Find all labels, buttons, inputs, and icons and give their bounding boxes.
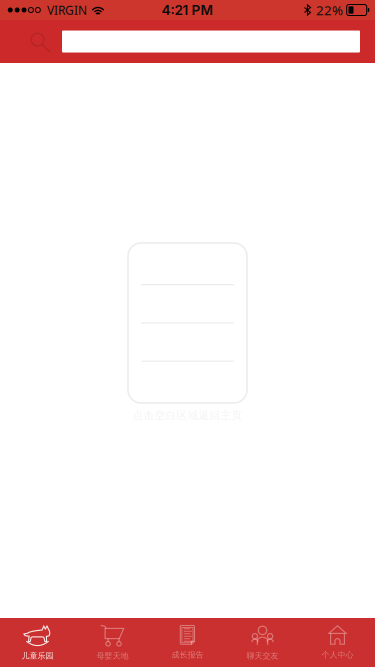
staticText: 母婴天地	[96, 651, 128, 661]
button[interactable]: 个人中心	[300, 618, 375, 667]
staticText: 22%	[316, 1, 343, 19]
button[interactable]: 成长报告	[150, 618, 225, 667]
staticText: 个人中心	[321, 650, 353, 660]
staticText: 点击空白区域返回主页	[132, 409, 242, 422]
staticText: 成长报告	[171, 650, 203, 660]
staticText: 4:21 PM	[161, 2, 213, 18]
button[interactable]: Search field	[62, 30, 360, 52]
button[interactable]: 儿童乐园	[0, 618, 75, 667]
staticText: VIRGIN	[47, 2, 87, 18]
staticText: 聊天交友	[246, 651, 278, 661]
button[interactable]: Search	[0, 21, 62, 62]
staticText: 儿童乐园	[21, 651, 53, 661]
button[interactable]: 母婴天地	[75, 618, 150, 667]
button[interactable]: 聊天交友	[225, 618, 300, 667]
